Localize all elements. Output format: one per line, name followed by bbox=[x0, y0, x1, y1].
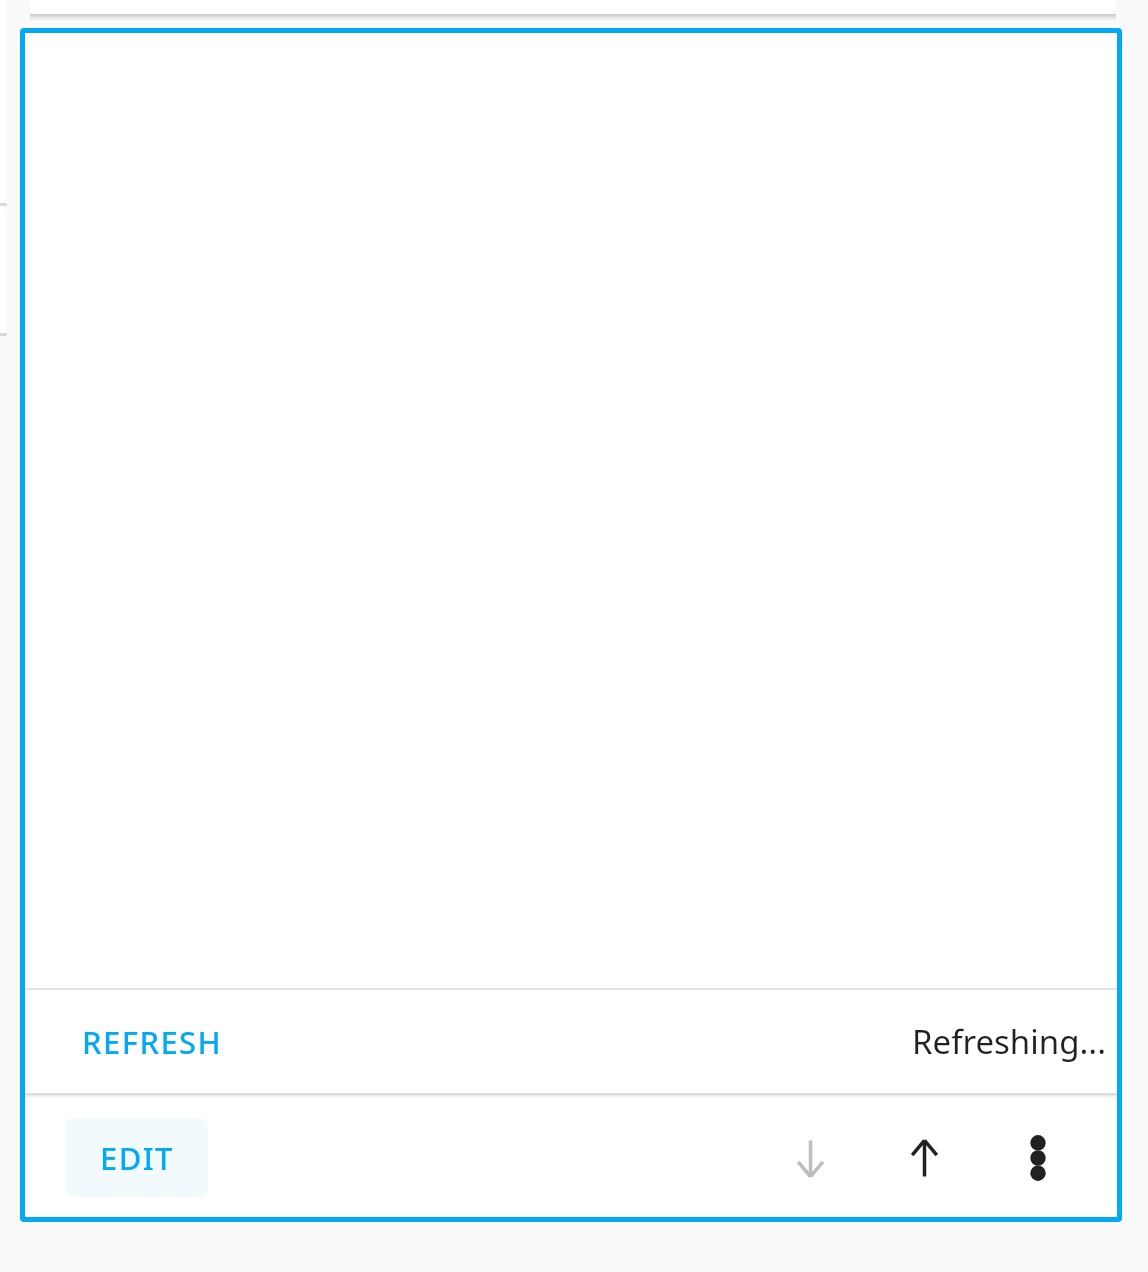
button[interactable]: REFRESH bbox=[61, 1007, 244, 1077]
button[interactable]: EDIT bbox=[65, 1118, 208, 1197]
button[interactable]: Move down bbox=[762, 1110, 858, 1206]
button[interactable]: More options bbox=[990, 1110, 1086, 1206]
staticText: Refreshing... bbox=[911, 1019, 1106, 1064]
button[interactable]: Move up bbox=[876, 1110, 972, 1206]
staticText: EDIT bbox=[100, 1137, 174, 1179]
staticText: REFRESH bbox=[82, 1021, 223, 1063]
